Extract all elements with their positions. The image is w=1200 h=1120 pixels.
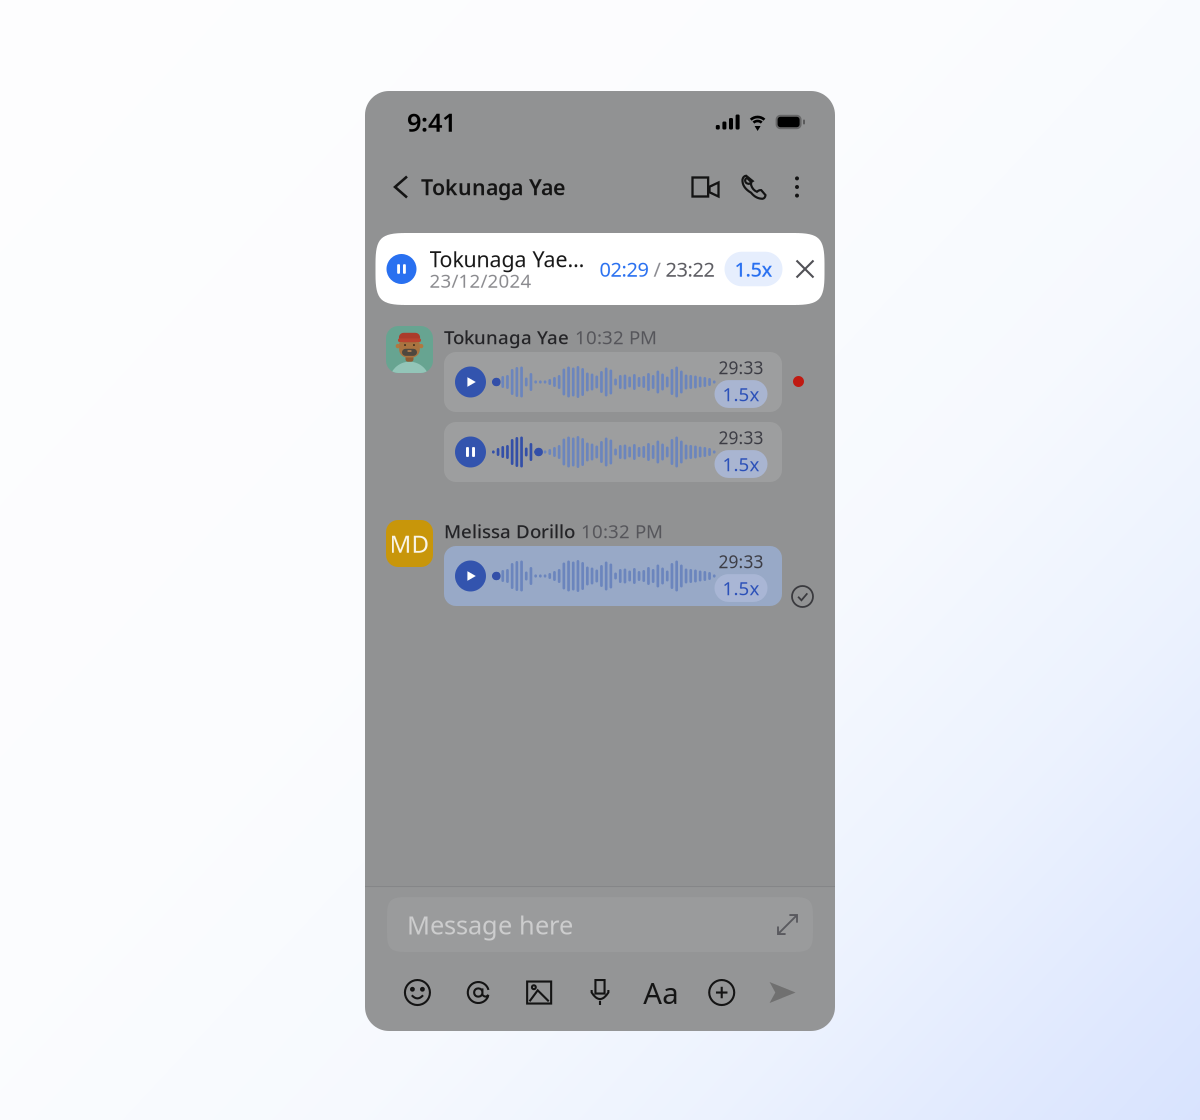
staticText: Melissa Dorillo xyxy=(444,519,575,543)
button[interactable]: Pause xyxy=(386,254,416,284)
staticText: 9:41 xyxy=(407,105,456,139)
staticText: 02:29 xyxy=(599,256,648,282)
staticText: Tokunaga Yaessre... xyxy=(429,245,585,273)
staticText: 23/12/2024 xyxy=(429,268,531,293)
button[interactable]: Voice message xyxy=(570,967,630,1018)
staticText: 10:32 PM xyxy=(575,325,657,349)
staticText: 29:33 xyxy=(718,426,763,449)
button[interactable]: 29:33 xyxy=(444,422,782,482)
button[interactable]: Playback speed xyxy=(714,252,782,286)
button[interactable]: Photo xyxy=(509,968,570,1016)
staticText: 10:32 PM xyxy=(581,519,663,543)
button[interactable]: Emoji xyxy=(387,968,448,1017)
button[interactable]: 29:33 xyxy=(444,352,782,412)
staticText: 1.5x xyxy=(722,452,759,476)
staticText: 23:22 xyxy=(665,256,714,282)
staticText: 1.5x xyxy=(722,382,759,406)
button[interactable]: Message here xyxy=(387,897,813,952)
button[interactable]: Aa xyxy=(630,960,691,1025)
button[interactable]: More options xyxy=(778,165,816,209)
staticText: Tokunaga Yae xyxy=(421,173,565,201)
button[interactable]: 29:33 xyxy=(444,546,782,606)
staticText: 1.5x xyxy=(722,576,759,600)
button[interactable]: Send xyxy=(752,969,813,1016)
button[interactable]: Back xyxy=(395,165,421,208)
staticText: 29:33 xyxy=(718,356,763,379)
staticText: MD xyxy=(389,528,429,559)
button[interactable]: Video call xyxy=(678,165,730,209)
staticText: 29:33 xyxy=(718,550,763,573)
staticText: Message here xyxy=(407,908,573,941)
staticText: Tokunaga Yae xyxy=(444,325,569,349)
button[interactable]: Voice call xyxy=(730,164,778,210)
button[interactable]: Close player xyxy=(782,248,814,289)
staticText: 1.5x xyxy=(734,256,772,282)
button[interactable]: Mention xyxy=(448,967,509,1018)
staticText: / xyxy=(648,256,665,282)
staticText: Aa xyxy=(643,973,678,1012)
button[interactable]: More xyxy=(691,967,752,1018)
